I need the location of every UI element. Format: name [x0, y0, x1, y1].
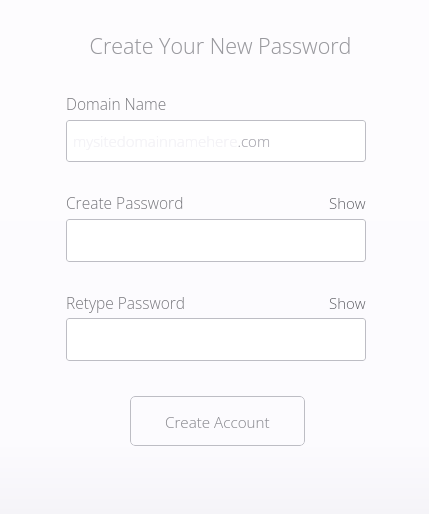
staticText: Domain Name — [66, 93, 167, 114]
button[interactable]: Create Account — [130, 396, 305, 446]
staticText: Create Password — [66, 192, 184, 213]
staticText: mysitedomainnamehere.com — [73, 131, 271, 151]
button[interactable]: Show — [327, 191, 368, 215]
staticText: Create Your New Password — [6, 31, 429, 60]
staticText: Show — [329, 293, 366, 313]
staticText: Create Account — [165, 412, 270, 433]
button[interactable]: Create Password — [66, 219, 366, 262]
button[interactable]: Retype Password — [66, 318, 366, 361]
button[interactable]: Domain Name — [66, 120, 366, 162]
button[interactable]: Show — [327, 291, 368, 315]
staticText: Show — [329, 193, 366, 213]
staticText: Retype Password — [66, 292, 186, 313]
